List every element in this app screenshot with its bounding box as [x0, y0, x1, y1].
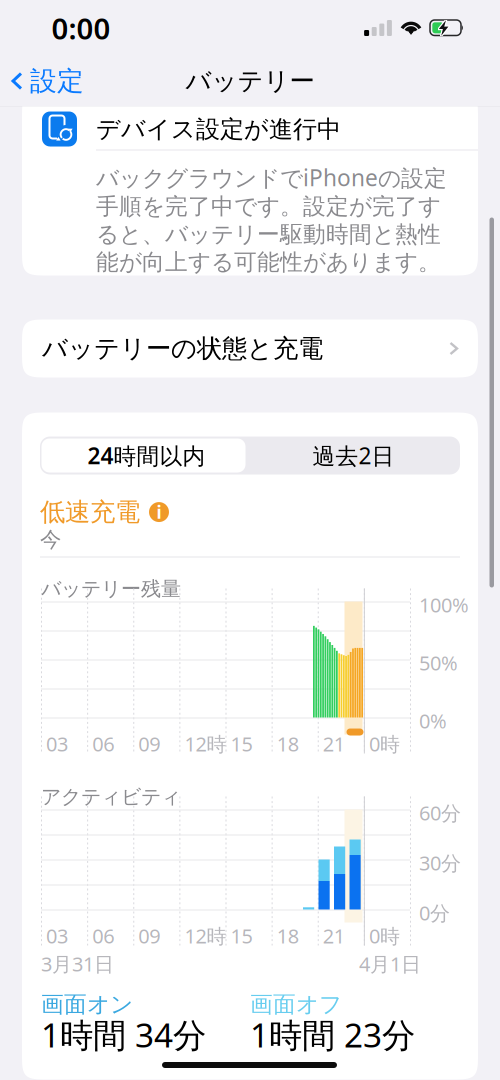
- staticText: 15: [230, 922, 252, 949]
- staticText: 18: [277, 922, 299, 949]
- staticText: 18: [277, 730, 299, 757]
- staticText: 0時: [369, 922, 400, 949]
- staticText: 60分: [419, 799, 461, 826]
- staticText: 0:00: [51, 8, 110, 47]
- staticText: バッテリーの状態と充電: [42, 333, 323, 364]
- staticText: 15: [230, 730, 252, 757]
- staticText: 50%: [419, 649, 458, 676]
- staticText: バッテリー残量: [41, 576, 181, 601]
- staticText: 0時: [369, 730, 400, 757]
- staticText: バックグラウンドでiPhoneの設定手順を完了中です。設定が完了すると、バッテリ…: [96, 162, 447, 276]
- staticText: 1時間 34分: [41, 1012, 206, 1057]
- staticText: 今: [40, 526, 61, 553]
- button[interactable]: 設定: [0, 56, 130, 106]
- staticText: 画面オン: [41, 990, 133, 1018]
- staticText: 24時間以内: [87, 440, 205, 470]
- staticText: 画面オフ: [250, 990, 342, 1018]
- staticText: 12時: [184, 730, 226, 757]
- staticText: 設定: [30, 65, 84, 97]
- staticText: i: [156, 500, 161, 523]
- staticText: 03: [46, 922, 68, 949]
- staticText: 3月31日: [41, 950, 114, 977]
- button[interactable]: バッテリーの状態と充電: [22, 319, 478, 377]
- staticText: 06: [92, 730, 114, 757]
- staticText: バッテリー: [185, 65, 314, 96]
- staticText: 4月1日: [359, 950, 421, 977]
- staticText: 03: [46, 730, 68, 757]
- button[interactable]: 過去2日: [250, 436, 457, 474]
- button[interactable]: 24時間以内: [43, 436, 250, 474]
- staticText: アクティビティ: [41, 784, 181, 809]
- staticText: 06: [92, 922, 114, 949]
- staticText: 0%: [419, 707, 447, 734]
- staticText: 09: [138, 730, 160, 757]
- staticText: 09: [138, 922, 160, 949]
- staticText: 21: [323, 730, 345, 757]
- staticText: デバイス設定が進行中: [96, 114, 341, 144]
- staticText: 100%: [419, 591, 469, 618]
- staticText: 21: [323, 922, 345, 949]
- staticText: 30分: [419, 849, 461, 876]
- staticText: 0分: [419, 899, 450, 926]
- staticText: 低速充電: [40, 496, 140, 528]
- staticText: 過去2日: [312, 440, 394, 470]
- staticText: 12時: [184, 922, 226, 949]
- staticText: 1時間 23分: [250, 1012, 415, 1057]
